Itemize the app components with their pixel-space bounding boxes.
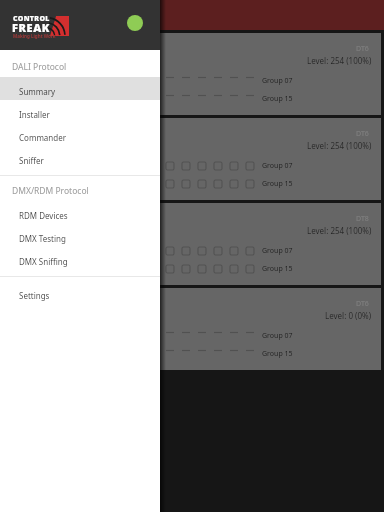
staticText: DALI Protocol [12,61,67,73]
button[interactable]: DT6 [4,33,381,115]
other: Control Freak logo [50,16,69,36]
button[interactable]: DT6 [4,288,381,370]
staticText: Level: 254 (100%) [307,140,372,151]
staticText: Group 07 [262,161,293,171]
button[interactable]: Installer [0,100,160,123]
staticText: Summary [19,86,56,97]
button[interactable]: Commander [0,123,160,146]
staticText: Group 15 [262,349,293,359]
button[interactable]: RDM Devices [0,201,160,224]
staticText: Settings [19,290,50,301]
staticText: Group 15 [262,179,293,189]
button[interactable]: Settings [0,281,160,304]
staticText: Level: 254 (100%) [307,225,372,236]
staticText: DT6 [356,299,369,309]
staticText: Making Light Work [13,33,56,39]
staticText: Group 15 [262,94,293,104]
staticText: Group 07 [262,246,293,256]
staticText: RDM Devices [19,210,68,221]
staticText: FREAK [12,20,50,35]
staticText: Installer [19,109,50,120]
staticText: DMX/RDM Protocol [12,185,89,197]
staticText: DT6 [356,44,369,54]
staticText: DMX Sniffing [19,256,68,267]
staticText: Group 07 [262,331,293,341]
staticText: Group 07 [262,76,293,86]
button[interactable]: DMX Sniffing [0,247,160,270]
staticText: DT8 [356,214,369,224]
button[interactable]: DT6 [4,118,381,200]
staticText: Sniffer [19,155,44,166]
button[interactable]: Sniffer [0,146,160,169]
staticText: Level: 0 (0%) [325,310,372,321]
staticText: DMX Testing [19,233,66,244]
button[interactable]: DMX Testing [0,224,160,247]
button[interactable]: DT8 [4,203,381,285]
staticText: Group 15 [262,264,293,274]
button[interactable]: Connection status [127,15,143,31]
staticText: Level: 254 (100%) [307,55,372,66]
staticText: CONTROL [13,14,50,24]
staticText: DT6 [356,129,369,139]
staticText: Commander [19,132,67,143]
button[interactable]: Summary [0,77,160,100]
